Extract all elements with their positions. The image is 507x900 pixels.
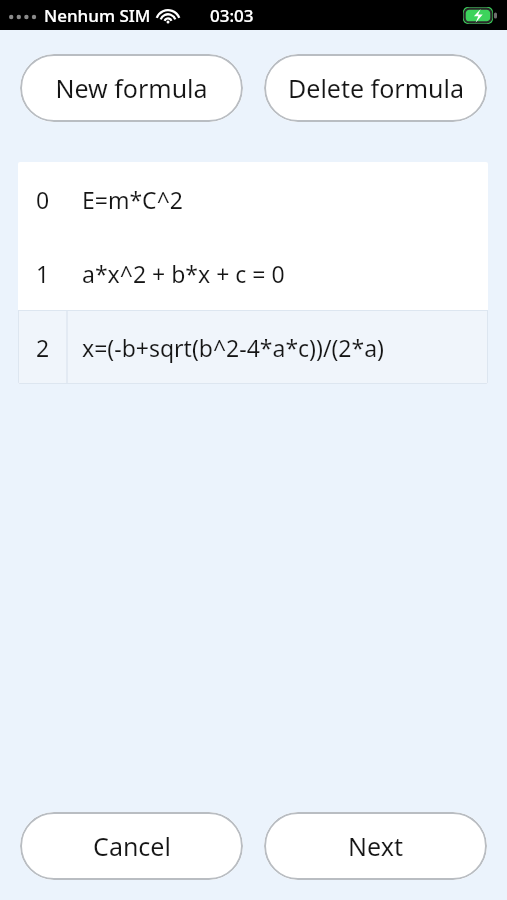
button[interactable]: 1	[18, 236, 488, 310]
staticText: a*x^2 + b*x + c = 0	[82, 258, 285, 289]
button[interactable]: 2	[18, 310, 488, 384]
button[interactable]: Delete formula	[264, 54, 487, 122]
button[interactable]: 0	[18, 162, 488, 236]
staticText: 03:03	[210, 4, 254, 27]
staticText: 1	[36, 258, 50, 289]
staticText: Cancel	[93, 829, 171, 863]
button[interactable]: New formula	[20, 54, 243, 122]
staticText: E=m*C^2	[82, 184, 183, 215]
staticText: Next	[348, 829, 403, 863]
button[interactable]: Next	[264, 812, 487, 880]
staticText: New formula	[55, 71, 208, 105]
button[interactable]: Cancel	[20, 812, 243, 880]
staticText: Delete formula	[288, 71, 464, 105]
staticText: 2	[36, 332, 50, 363]
staticText: Nenhum SIM	[44, 4, 151, 27]
staticText: x=(-b+sqrt(b^2-4*a*c))/(2*a)	[82, 332, 384, 363]
staticText: 0	[36, 184, 50, 215]
